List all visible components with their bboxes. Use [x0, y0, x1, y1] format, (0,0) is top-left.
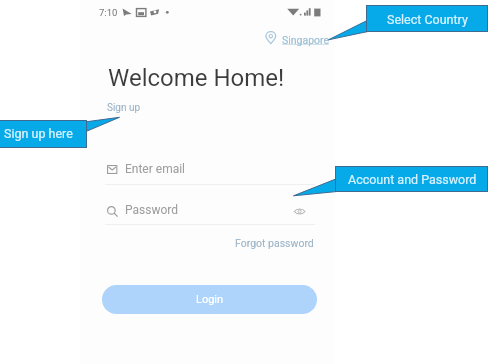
button[interactable]: Select country: Singapore	[262, 29, 330, 48]
button[interactable]: Sign up	[104, 99, 146, 115]
button[interactable]: Sign up here	[0, 120, 87, 148]
staticText: Singapore	[282, 34, 330, 46]
button[interactable]: Password	[106, 199, 286, 225]
staticText: Sign up	[107, 102, 141, 114]
staticText: Sign up here	[4, 126, 73, 141]
staticText: Login	[196, 293, 224, 306]
staticText: 7:10	[99, 7, 118, 18]
staticText: Account and Password	[348, 172, 477, 187]
staticText: Select Country	[387, 12, 468, 27]
button[interactable]: Enter email	[106, 158, 318, 184]
staticText: Forgot password	[235, 237, 314, 249]
button[interactable]: Show password	[293, 205, 307, 218]
staticText: Enter email	[125, 162, 186, 176]
staticText: Welcome Home!	[108, 64, 285, 92]
button[interactable]: Account and Password	[335, 166, 488, 192]
button[interactable]: Forgot password	[232, 235, 316, 251]
staticText: Password	[125, 203, 179, 217]
button[interactable]: Select Country	[366, 5, 488, 32]
button[interactable]: Login	[102, 285, 317, 314]
